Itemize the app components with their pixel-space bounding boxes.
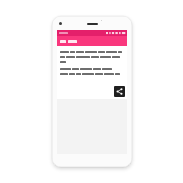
button[interactable]: Share: [57, 46, 127, 99]
button[interactable]: Share: [114, 86, 125, 97]
button[interactable]: [57, 36, 127, 46]
